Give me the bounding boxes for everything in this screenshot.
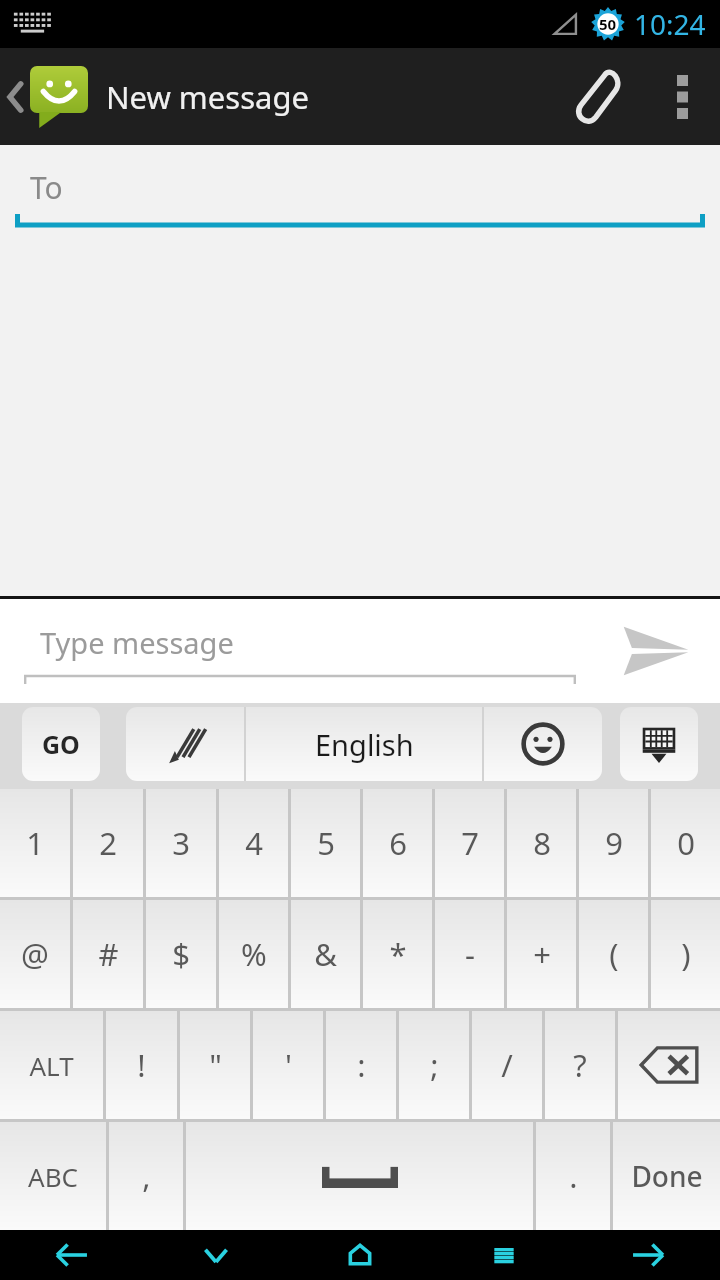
staticText: 7: [461, 822, 479, 864]
staticText: 4: [245, 822, 263, 864]
staticText: GO: [42, 727, 80, 761]
button[interactable]: Hide keyboard: [144, 1230, 288, 1280]
staticText: 5: [317, 822, 335, 864]
staticText: /: [501, 1044, 513, 1086]
button[interactable]: !: [106, 1011, 177, 1119]
staticText: ): [681, 933, 691, 975]
button[interactable]: 1: [0, 789, 70, 897]
button[interactable]: ABC: [0, 1122, 106, 1230]
staticText: English: [315, 725, 414, 764]
button[interactable]: Home: [288, 1230, 432, 1280]
staticText: !: [137, 1044, 146, 1086]
button[interactable]: 0: [651, 789, 720, 897]
button[interactable]: [620, 707, 698, 781]
staticText: 9: [605, 822, 623, 864]
button[interactable]: %: [219, 900, 288, 1008]
staticText: Done: [631, 1157, 703, 1195]
button[interactable]: $: [146, 900, 216, 1008]
staticText: &: [314, 933, 337, 975]
staticText: Type message: [40, 623, 234, 662]
staticText: -: [465, 933, 475, 975]
button[interactable]: 6: [363, 789, 432, 897]
staticText: ALT: [29, 1048, 74, 1083]
button[interactable]: (: [579, 900, 648, 1008]
button[interactable]: 4: [219, 789, 288, 897]
button[interactable]: English: [246, 707, 482, 781]
staticText: 8: [533, 822, 551, 864]
button[interactable]: ,: [109, 1122, 183, 1230]
staticText: (: [609, 933, 619, 975]
button[interactable]: 8: [507, 789, 576, 897]
button[interactable]: 5: [291, 789, 360, 897]
staticText: %: [241, 933, 267, 975]
button[interactable]: [618, 1011, 720, 1119]
button[interactable]: More options: [644, 48, 720, 145]
button[interactable]: [126, 707, 244, 781]
button[interactable]: 3: [146, 789, 216, 897]
staticText: @: [21, 933, 49, 975]
button[interactable]: Send: [596, 599, 714, 703]
button[interactable]: ": [180, 1011, 250, 1119]
button[interactable]: ALT: [0, 1011, 103, 1119]
staticText: 2: [99, 822, 117, 864]
staticText: New message: [106, 76, 309, 118]
button[interactable]: GO: [22, 707, 100, 781]
staticText: 3: [172, 822, 190, 864]
staticText: #: [98, 933, 119, 975]
staticText: 0: [677, 822, 695, 864]
button[interactable]: ;: [399, 1011, 469, 1119]
button[interactable]: ?: [545, 1011, 615, 1119]
button[interactable]: 9: [579, 789, 648, 897]
button[interactable]: Forward: [576, 1230, 720, 1280]
button[interactable]: *: [363, 900, 432, 1008]
button[interactable]: Recent apps: [432, 1230, 576, 1280]
button[interactable]: ): [651, 900, 720, 1008]
button[interactable]: 2: [73, 789, 143, 897]
button[interactable]: .: [536, 1122, 610, 1230]
button[interactable]: /: [472, 1011, 542, 1119]
button[interactable]: +: [507, 900, 576, 1008]
button[interactable]: &: [291, 900, 360, 1008]
staticText: ': [285, 1044, 292, 1086]
staticText: ": [209, 1044, 222, 1086]
button[interactable]: [0, 48, 94, 145]
staticText: 1: [26, 822, 44, 864]
staticText: ;: [430, 1044, 439, 1086]
staticText: .: [569, 1155, 578, 1197]
staticText: 6: [389, 822, 407, 864]
staticText: ?: [573, 1044, 587, 1086]
staticText: $: [172, 933, 190, 975]
staticText: To: [30, 167, 63, 208]
staticText: *: [389, 933, 407, 975]
button[interactable]: :: [326, 1011, 396, 1119]
button[interactable]: #: [73, 900, 143, 1008]
button[interactable]: -: [435, 900, 504, 1008]
staticText: :: [357, 1044, 366, 1086]
button[interactable]: Attach: [544, 48, 644, 145]
button[interactable]: 7: [435, 789, 504, 897]
button[interactable]: [484, 707, 602, 781]
staticText: ABC: [28, 1159, 78, 1194]
button[interactable]: Back: [0, 1230, 144, 1280]
button[interactable]: @: [0, 900, 70, 1008]
staticText: 10:24: [634, 5, 706, 43]
staticText: 50: [599, 14, 617, 34]
staticText: +: [533, 933, 551, 975]
staticText: ,: [142, 1155, 151, 1197]
button[interactable]: Done: [613, 1122, 720, 1230]
button[interactable]: ': [253, 1011, 323, 1119]
button[interactable]: [186, 1122, 533, 1230]
